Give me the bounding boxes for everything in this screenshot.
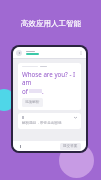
button[interactable]: More options [79, 51, 83, 55]
button[interactable]: 提交答案 [60, 143, 81, 150]
staticText: 选项解析 [25, 100, 40, 105]
staticText: of [22, 87, 28, 95]
button[interactable]: Menu [18, 144, 22, 148]
staticText: 提交答案 [63, 144, 78, 149]
button[interactable]: Whose are you? - I am [18, 63, 81, 110]
button[interactable]: 解析题目，带你走出困境 [18, 113, 81, 129]
button[interactable]: Profile [16, 50, 22, 56]
staticText: . [42, 87, 44, 95]
button[interactable]: 选项解析 [22, 98, 43, 107]
staticText: Whose are you? - I am [22, 70, 77, 86]
staticText: 高效应用人工智能 [21, 19, 81, 28]
staticText: 解析题目，带你走出困境 [22, 121, 62, 126]
